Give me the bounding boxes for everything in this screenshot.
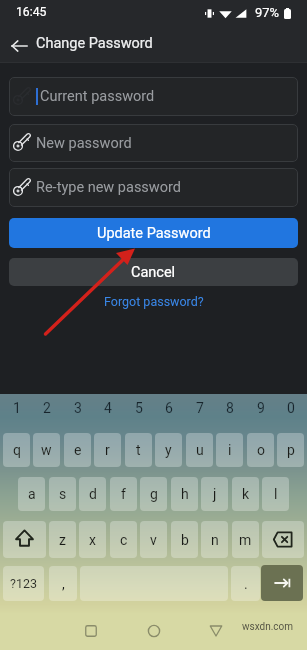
button[interactable]: , <box>49 566 77 601</box>
button[interactable]: q <box>3 433 30 467</box>
button[interactable]: i <box>216 433 243 467</box>
button[interactable]: Space <box>80 566 228 601</box>
button[interactable]: t <box>125 433 152 467</box>
button[interactable]: 7 <box>186 396 213 420</box>
staticText: i <box>228 442 232 458</box>
staticText: z <box>59 532 66 548</box>
button[interactable]: Back <box>6 32 33 59</box>
button[interactable]: 8 <box>216 396 243 420</box>
staticText: y <box>165 442 172 458</box>
button[interactable]: 4 <box>94 396 121 420</box>
button[interactable]: o <box>247 433 274 467</box>
button[interactable]: Home <box>140 617 168 645</box>
button[interactable]: p <box>277 433 304 467</box>
staticText: 16:45 <box>16 5 47 19</box>
button[interactable]: New password <box>9 124 298 162</box>
button[interactable]: Forgot password? <box>104 294 204 309</box>
button[interactable]: 6 <box>155 396 182 420</box>
button[interactable]: k <box>232 477 259 511</box>
button[interactable]: h <box>171 477 198 511</box>
button[interactable]: 0 <box>277 396 304 420</box>
staticText: , <box>62 576 65 592</box>
button[interactable]: b <box>171 521 198 558</box>
button[interactable]: 2 <box>33 396 60 420</box>
button[interactable]: n <box>201 521 228 558</box>
button[interactable]: u <box>186 433 213 467</box>
button[interactable]: j <box>201 477 228 511</box>
button[interactable]: l <box>262 477 289 511</box>
staticText: 0 <box>287 400 295 416</box>
button[interactable]: ?123 <box>3 566 44 601</box>
staticText: 8 <box>226 400 234 416</box>
staticText: 97% <box>255 5 280 20</box>
staticText: m <box>239 532 252 548</box>
staticText: New password <box>36 135 132 152</box>
staticText: o <box>257 442 265 458</box>
button[interactable]: m <box>232 521 259 558</box>
button[interactable]: Shift <box>3 521 46 558</box>
button[interactable]: g <box>140 477 167 511</box>
staticText: v <box>150 532 157 548</box>
button[interactable]: Back <box>202 617 230 645</box>
staticText: Re-type new password <box>36 179 181 196</box>
staticText: w <box>41 442 52 458</box>
button[interactable]: Re-type new password <box>9 168 298 207</box>
staticText: 3 <box>74 400 82 416</box>
staticText: r <box>105 442 110 458</box>
button[interactable]: . <box>231 566 260 601</box>
button[interactable]: e <box>64 433 91 467</box>
staticText: Change Password <box>36 35 153 52</box>
button[interactable]: d <box>79 477 106 511</box>
button[interactable]: f <box>110 477 137 511</box>
button[interactable]: c <box>110 521 137 558</box>
staticText: Cancel <box>131 264 176 281</box>
staticText: k <box>242 486 250 502</box>
button[interactable]: 9 <box>247 396 274 420</box>
button[interactable]: Enter <box>261 565 303 601</box>
button[interactable]: Update Password <box>9 218 298 248</box>
staticText: j <box>213 486 217 502</box>
button[interactable]: 5 <box>125 396 152 420</box>
staticText: . <box>244 576 248 592</box>
staticText: h <box>181 486 189 502</box>
button[interactable]: a <box>18 477 45 511</box>
staticText: Update Password <box>97 225 211 242</box>
button[interactable]: Backspace <box>262 521 304 558</box>
staticText: s <box>59 486 67 502</box>
staticText: 2 <box>43 400 51 416</box>
staticText: g <box>150 486 158 502</box>
button[interactable]: Current password <box>9 77 298 116</box>
staticText: 1 <box>13 400 21 416</box>
staticText: 9 <box>257 400 265 416</box>
staticText: d <box>89 486 97 502</box>
staticText: q <box>13 442 21 458</box>
staticText: l <box>274 486 278 502</box>
button[interactable]: w <box>33 433 60 467</box>
staticText: 7 <box>196 400 204 416</box>
staticText: 5 <box>135 400 143 416</box>
button[interactable]: 1 <box>3 396 30 420</box>
button[interactable]: Cancel <box>9 258 298 286</box>
button[interactable]: x <box>79 521 106 558</box>
button[interactable]: z <box>49 521 76 558</box>
staticText: p <box>287 442 295 458</box>
staticText: 6 <box>165 400 173 416</box>
staticText: Current password <box>40 88 155 105</box>
staticText: a <box>28 486 36 502</box>
button[interactable]: 3 <box>64 396 91 420</box>
staticText: x <box>89 532 96 548</box>
button[interactable]: s <box>49 477 76 511</box>
staticText: t <box>136 442 141 458</box>
staticText: e <box>74 442 82 458</box>
staticText: ?123 <box>10 576 37 591</box>
button[interactable]: Recents <box>77 617 105 645</box>
button[interactable]: r <box>94 433 121 467</box>
staticText: 4 <box>104 400 112 416</box>
staticText: n <box>211 532 219 548</box>
staticText: wsxdn.com <box>242 621 294 633</box>
staticText: b <box>181 532 189 548</box>
button[interactable]: y <box>155 433 182 467</box>
staticText: f <box>121 486 126 502</box>
staticText: u <box>196 442 204 458</box>
button[interactable]: v <box>140 521 167 558</box>
